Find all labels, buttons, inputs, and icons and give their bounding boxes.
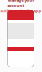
staticText: online or in the app — [0, 8, 41, 13]
staticText: Manage your account — [7, 0, 34, 8]
